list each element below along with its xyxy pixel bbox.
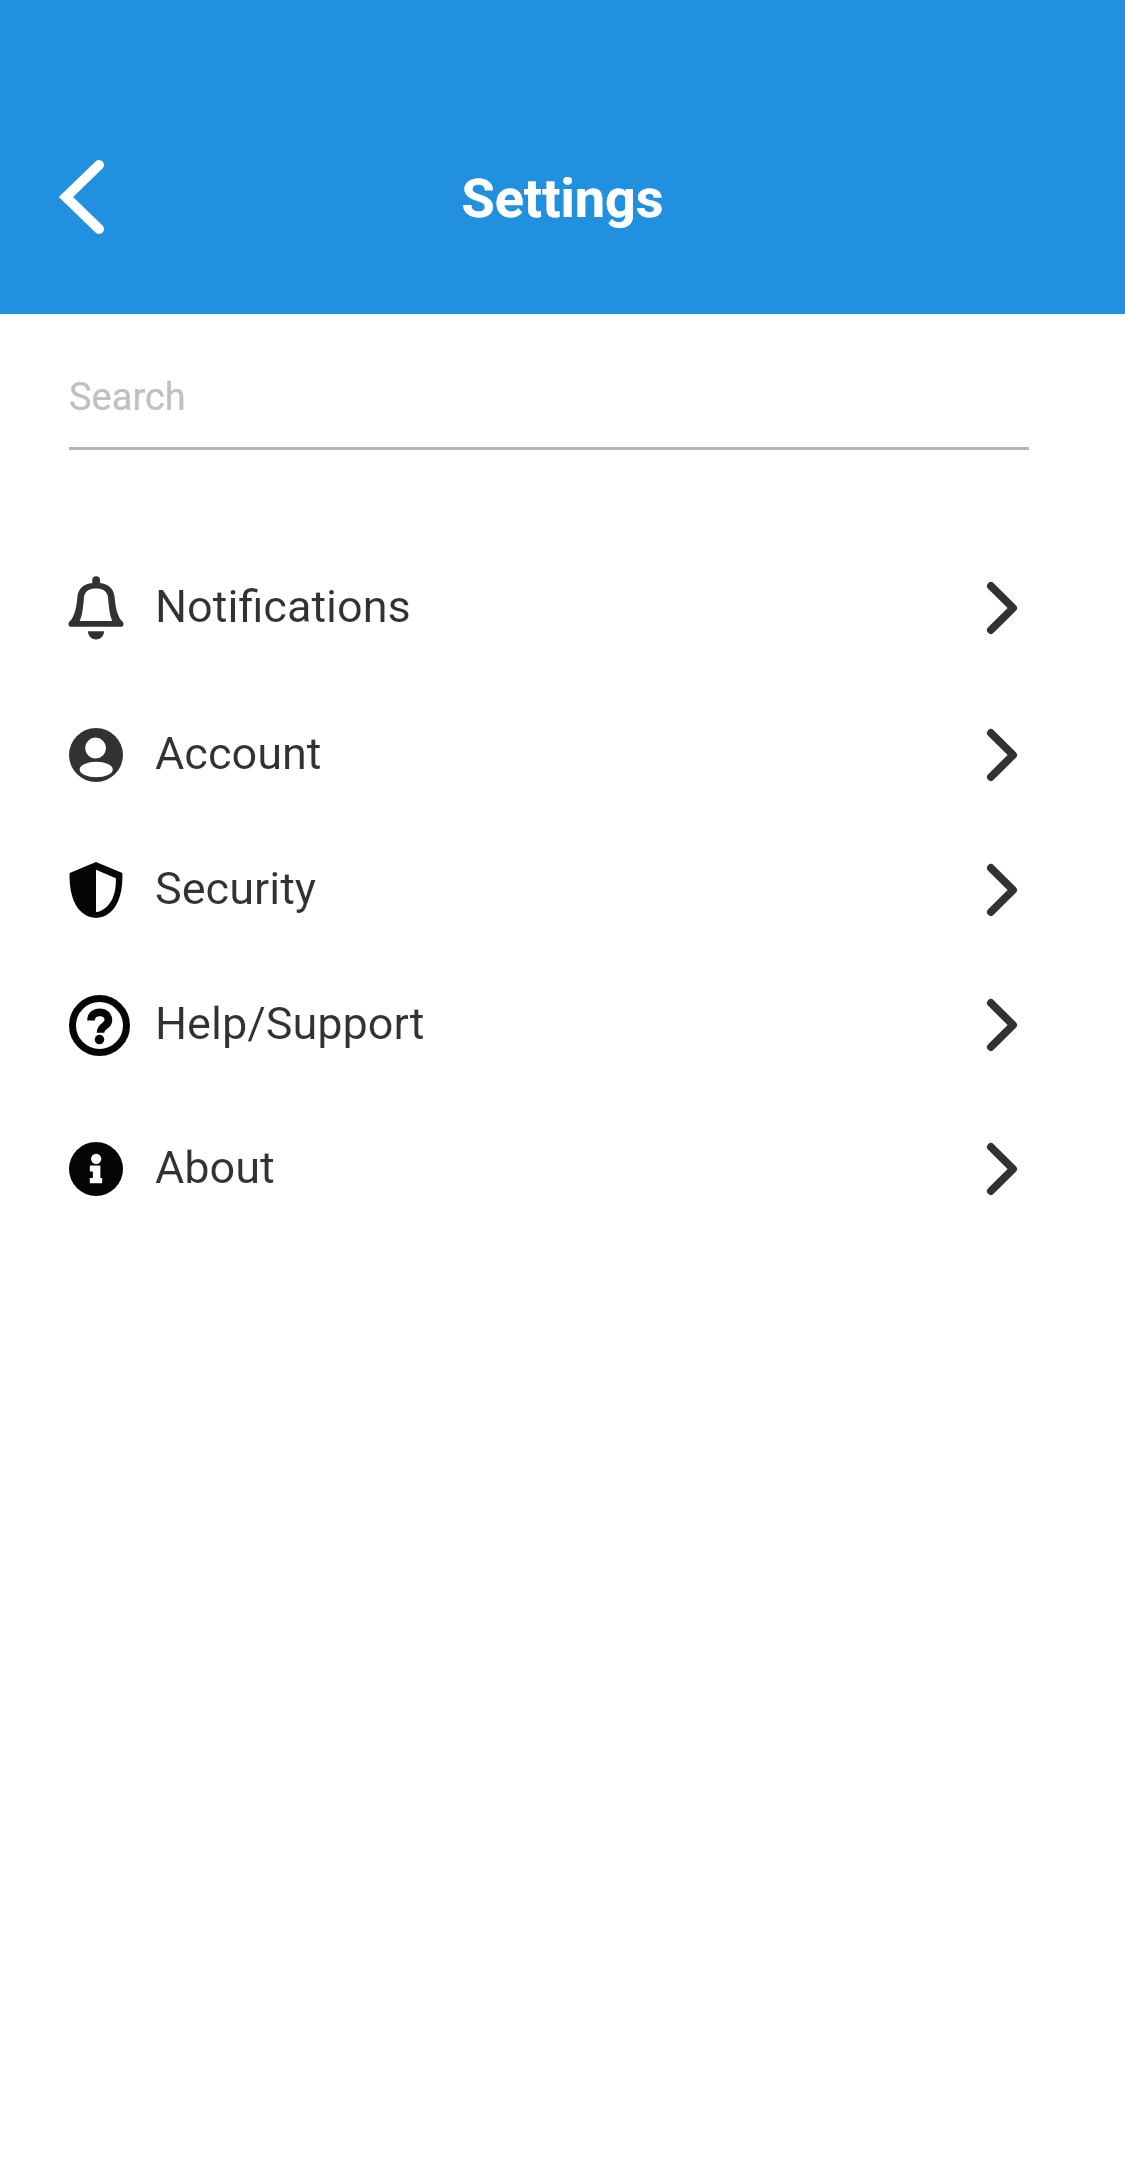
staticText: Security — [155, 862, 317, 915]
staticText: Account — [155, 727, 322, 780]
staticText: About — [155, 1141, 275, 1194]
staticText: Notifications — [155, 580, 411, 633]
staticText: Search — [69, 375, 186, 420]
button[interactable]: Notifications — [0, 534, 1125, 681]
staticText: Settings — [461, 167, 664, 230]
button[interactable]: Search — [69, 338, 1029, 450]
button[interactable]: Help/Support — [0, 951, 1125, 1098]
staticText: Help/Support — [155, 997, 425, 1050]
button[interactable]: Account — [0, 681, 1125, 828]
button[interactable]: Back — [25, 124, 140, 270]
button[interactable]: About — [0, 1098, 1125, 1239]
button[interactable]: Security — [0, 828, 1125, 951]
